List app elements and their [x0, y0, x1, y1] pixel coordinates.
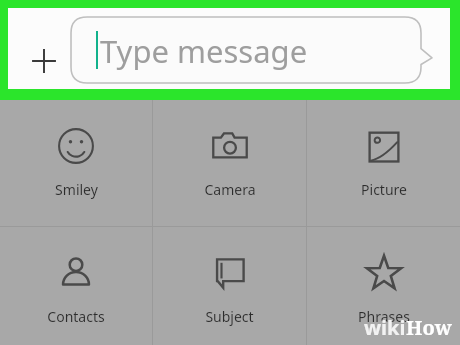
staticText: How [406, 314, 452, 341]
button[interactable]: Picture [307, 100, 460, 226]
staticText: Picture [361, 180, 407, 199]
staticText: Camera [204, 180, 256, 199]
staticText: wiki [364, 314, 406, 341]
staticText: Contacts [47, 307, 105, 326]
staticText: Type message [100, 30, 308, 72]
button[interactable]: Subject [153, 227, 306, 345]
button[interactable]: Add attachment [21, 38, 67, 84]
button[interactable]: Contacts [0, 227, 152, 345]
staticText: Subject [205, 307, 254, 326]
staticText: Phrases [358, 307, 410, 326]
button[interactable]: Camera [153, 100, 306, 226]
button[interactable]: Type message [71, 17, 433, 83]
button[interactable]: Smiley [0, 100, 152, 226]
button[interactable]: Phrases [307, 227, 460, 345]
staticText: Smiley [55, 180, 98, 199]
